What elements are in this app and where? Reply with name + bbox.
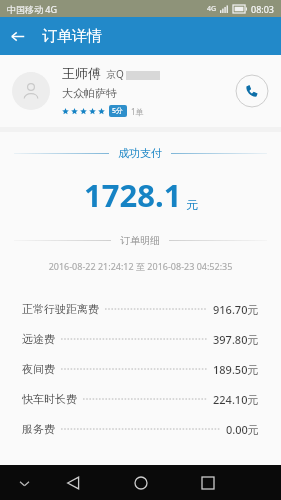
staticText: 2016-08-22 21:24:12 至 2016-08-23 04:52:3… [0, 260, 281, 272]
staticText: 成功支付 [118, 146, 162, 160]
staticText: 大众帕萨特 [62, 86, 117, 100]
staticText: 服务费 [22, 422, 55, 436]
staticText: 订单明细 [120, 234, 160, 247]
button[interactable]: Hide navigation bar [12, 471, 36, 495]
button[interactable]: 正常行驶距离费 [0, 294, 281, 324]
button[interactable]: Call driver [235, 74, 269, 108]
staticText: 0.00元 [226, 422, 259, 437]
staticText: 4G [207, 4, 217, 14]
staticText: 916.70元 [213, 302, 259, 317]
staticText: 快车时长费 [22, 392, 77, 406]
staticText: 224.10元 [213, 392, 259, 407]
staticText: 1单 [131, 106, 144, 117]
button[interactable]: 王师傅 [0, 55, 281, 127]
staticText: 中国移动 4G [7, 3, 58, 15]
button[interactable]: 快车时长费 [0, 384, 281, 414]
staticText: 王师傅 [62, 65, 101, 81]
staticText: 夜间费 [22, 362, 55, 376]
staticText: 397.80元 [213, 332, 259, 347]
button[interactable]: 夜间费 [0, 354, 281, 384]
staticText: 5分 [112, 106, 124, 116]
button[interactable]: Back [58, 468, 88, 498]
button[interactable]: 远途费 [0, 324, 281, 354]
staticText: 08:03 [251, 3, 275, 15]
staticText: 订单详情 [42, 27, 102, 46]
staticText: 正常行驶距离费 [22, 302, 99, 316]
button[interactable]: 服务费 [0, 414, 281, 444]
button[interactable]: Recent apps [193, 468, 223, 498]
staticText: 189.50元 [213, 362, 259, 377]
button[interactable]: Back [0, 19, 34, 53]
staticText: 1728.1 [84, 174, 182, 216]
staticText: 远途费 [22, 332, 55, 346]
staticText: 京Q [106, 67, 124, 81]
button[interactable]: Home [126, 468, 156, 498]
staticText: 元 [186, 197, 198, 212]
